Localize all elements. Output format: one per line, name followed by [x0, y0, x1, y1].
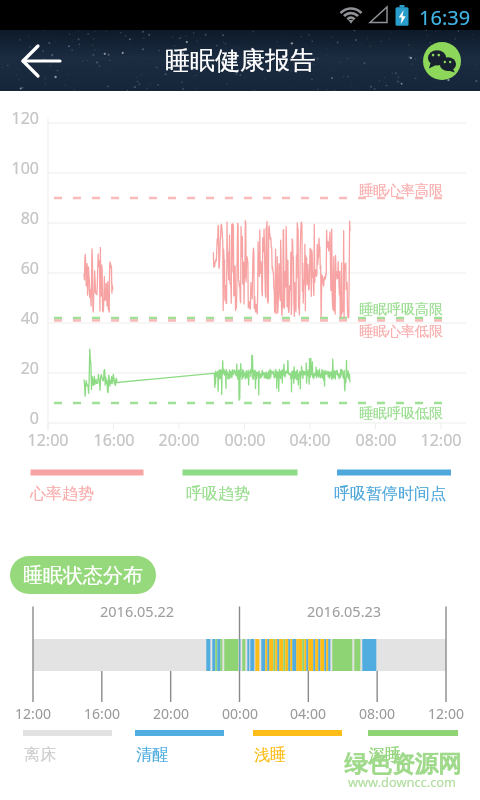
- staticText: 离床: [24, 745, 56, 765]
- staticText: 2016.05.22: [100, 601, 175, 621]
- staticText: 深睡: [369, 745, 401, 765]
- button[interactable]: Share to WeChat: [423, 42, 461, 80]
- button[interactable]: 清醒: [135, 730, 224, 765]
- button[interactable]: 睡眠状态分布: [10, 556, 156, 594]
- button[interactable]: 离床: [23, 730, 112, 765]
- staticText: 清醒: [136, 745, 168, 765]
- staticText: 0: [0, 407, 39, 429]
- staticText: 16:00: [72, 704, 132, 723]
- staticText: 16:39: [419, 4, 471, 31]
- button[interactable]: 深睡: [368, 730, 458, 765]
- staticText: 12:00: [3, 704, 63, 723]
- staticText: 20:00: [141, 704, 201, 723]
- staticText: 100: [0, 157, 39, 179]
- staticText: 12:00: [416, 704, 476, 723]
- staticText: 20:00: [149, 429, 209, 451]
- staticText: 40: [0, 307, 39, 329]
- staticText: 呼吸暂停时间点: [334, 484, 446, 504]
- staticText: 绿色资源网: [344, 749, 462, 779]
- staticText: 睡眠心率低限: [359, 323, 443, 341]
- staticText: 00:00: [215, 429, 275, 451]
- staticText: 睡眠呼吸低限: [359, 405, 443, 423]
- staticText: 04:00: [278, 704, 338, 723]
- staticText: 20: [0, 357, 39, 379]
- staticText: 80: [0, 207, 39, 229]
- staticText: www.downcc.com: [348, 773, 456, 790]
- staticText: 12:00: [18, 429, 78, 451]
- staticText: 12:00: [411, 429, 471, 451]
- staticText: 16:00: [84, 429, 144, 451]
- staticText: 心率趋势: [30, 484, 94, 504]
- staticText: 00:00: [210, 704, 270, 723]
- staticText: 呼吸趋势: [186, 484, 250, 504]
- staticText: 浅睡: [254, 745, 286, 765]
- staticText: 08:00: [346, 429, 406, 451]
- staticText: 08:00: [347, 704, 407, 723]
- staticText: 睡眠心率高限: [359, 182, 443, 200]
- staticText: 60: [0, 257, 39, 279]
- button[interactable]: 浅睡: [253, 730, 342, 765]
- staticText: 睡眠状态分布: [23, 563, 143, 588]
- staticText: 睡眠呼吸高限: [359, 301, 443, 319]
- staticText: 2016.05.23: [307, 601, 382, 621]
- staticText: 04:00: [280, 429, 340, 451]
- button[interactable]: Back: [0, 31, 60, 91]
- staticText: 睡眠健康报告: [165, 45, 315, 76]
- staticText: 120: [0, 107, 39, 129]
